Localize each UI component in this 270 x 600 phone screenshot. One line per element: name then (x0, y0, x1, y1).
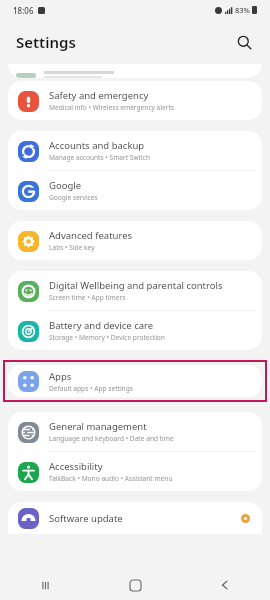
button[interactable]: Safety and emergency (8, 81, 262, 120)
staticText: TalkBack • Mono audio • Assistant menu (49, 474, 173, 483)
button[interactable]: Software update (8, 502, 262, 534)
staticText: Default apps • App settings (49, 384, 133, 393)
staticText: 83% (235, 5, 250, 15)
staticText: Medical info • Wireless emergency alerts (49, 103, 175, 112)
button[interactable]: Recents (0, 570, 90, 600)
button[interactable]: Back (180, 570, 270, 600)
button[interactable]: Digital Wellbeing and parental controls (8, 271, 262, 310)
button[interactable]: Accounts and backup (8, 131, 262, 170)
staticText: Google (49, 179, 82, 192)
staticText: Accounts and backup (49, 139, 145, 152)
staticText: Software update (49, 512, 123, 525)
staticText: Storage • Memory • Device protection (49, 333, 165, 342)
staticText: Apps (49, 370, 72, 383)
staticText: General management (49, 420, 147, 433)
staticText: Safety and emergency (49, 89, 149, 102)
staticText: Language and keyboard • Date and time (49, 434, 174, 443)
button[interactable]: Accessibility (8, 452, 262, 491)
staticText: 18:06 (13, 5, 34, 16)
staticText: Battery and device care (49, 319, 154, 332)
staticText: Advanced features (49, 229, 133, 242)
staticText: Digital Wellbeing and parental controls (49, 279, 223, 292)
staticText: Accessibility (49, 460, 103, 473)
button[interactable]: Advanced features (8, 221, 262, 260)
button[interactable]: Battery and device care (8, 311, 262, 350)
staticText: Labs • Side key (49, 243, 95, 252)
button[interactable]: Apps (8, 365, 262, 397)
staticText: Google services (49, 193, 98, 202)
button[interactable]: Google (8, 171, 262, 210)
staticText: Manage accounts • Smart Switch (49, 153, 150, 162)
button[interactable]: Home (90, 570, 180, 600)
button[interactable]: Search (230, 28, 258, 56)
button[interactable]: General management (8, 412, 262, 451)
staticText: Settings (16, 32, 76, 52)
staticText: Screen time • App timers (49, 293, 126, 302)
